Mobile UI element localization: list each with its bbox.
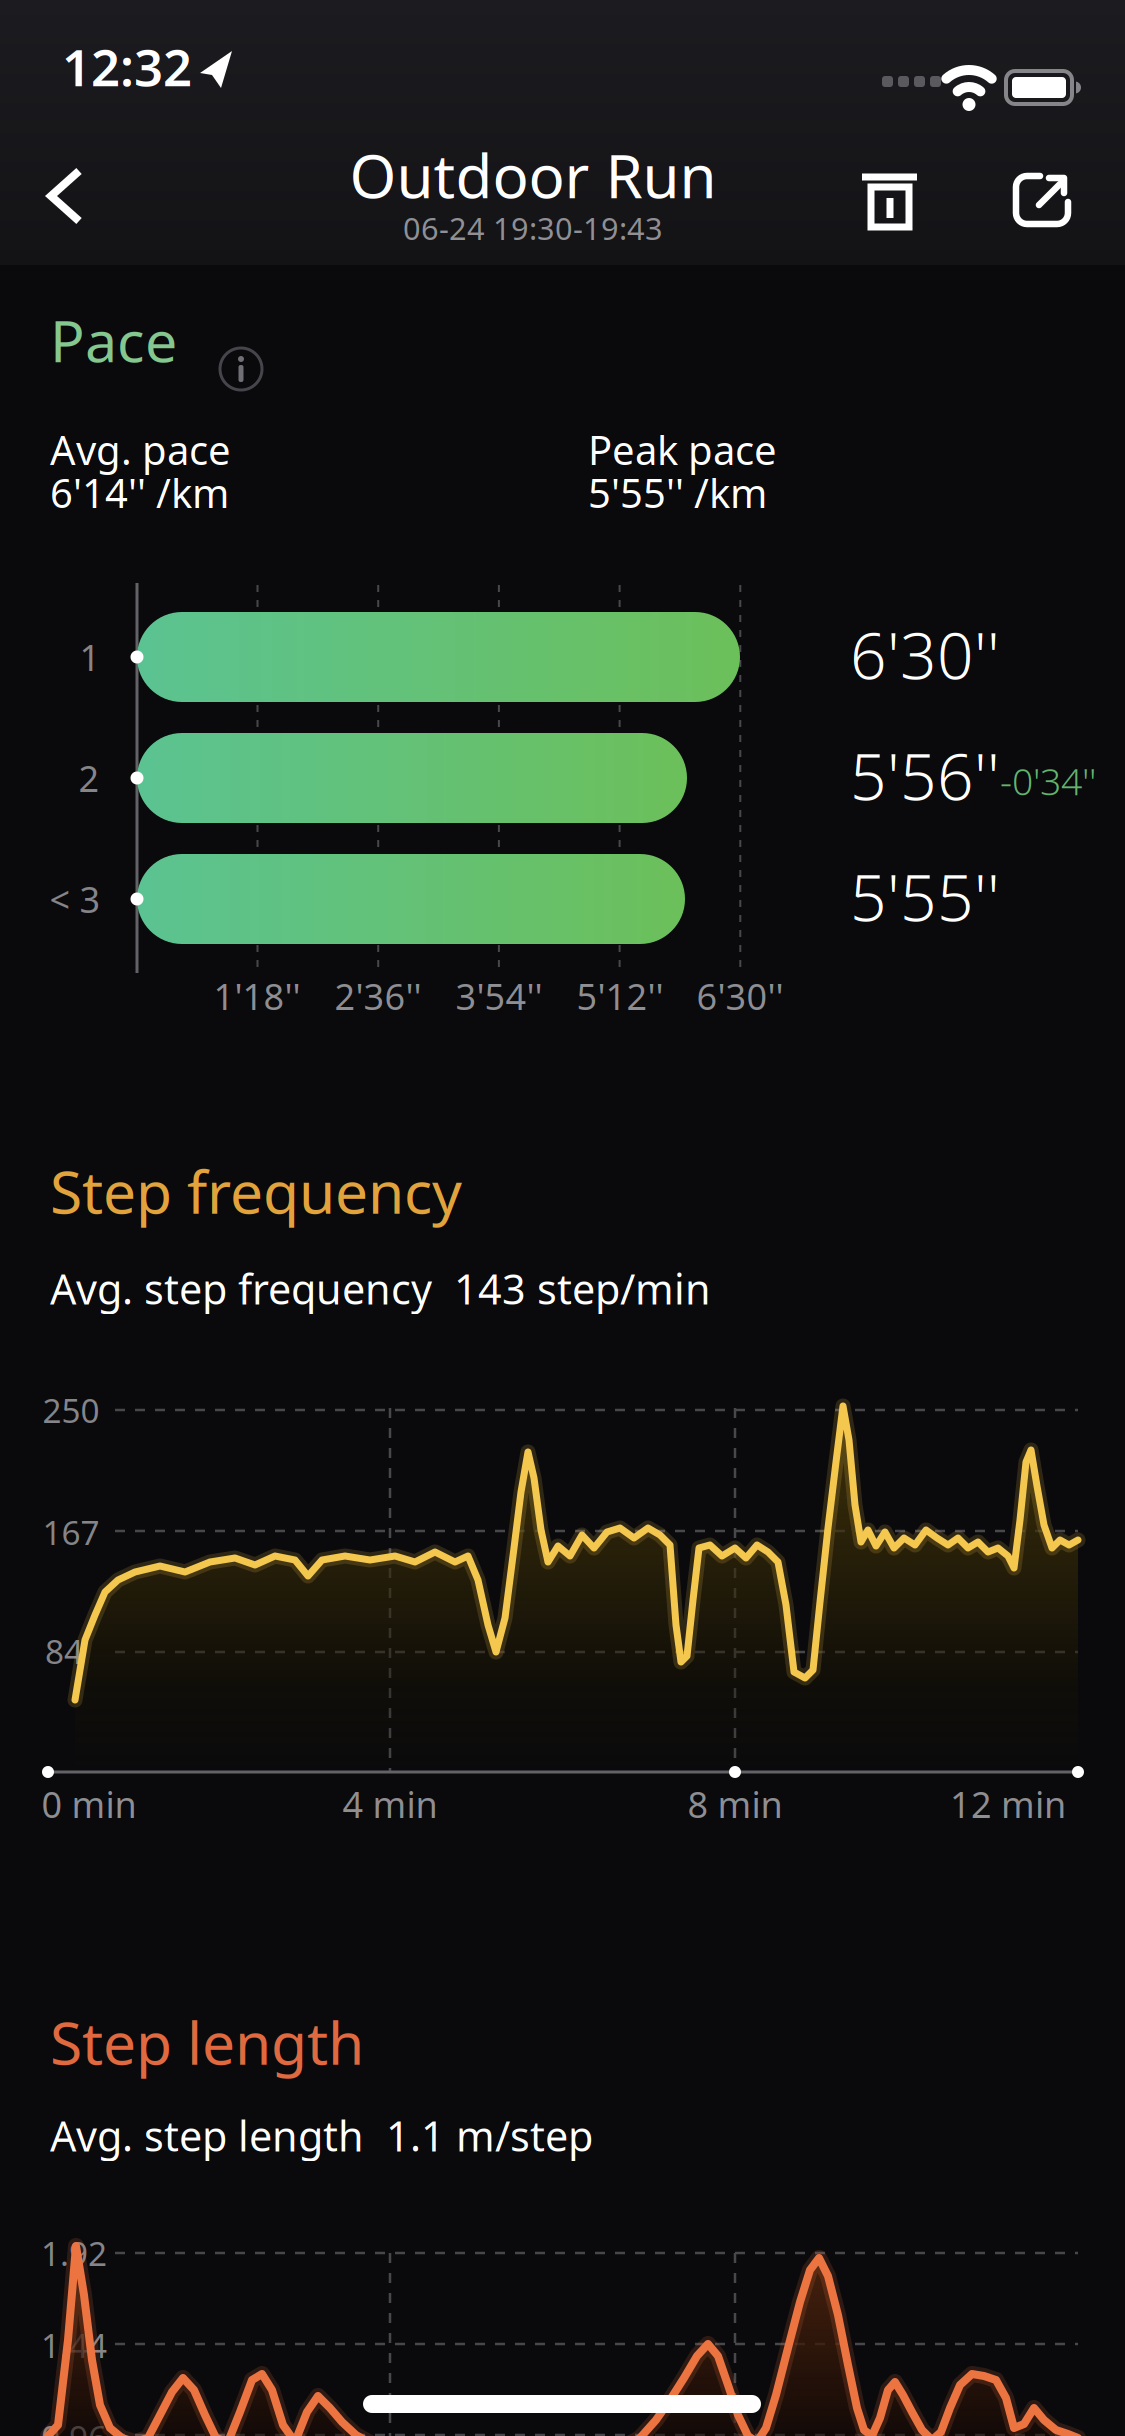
staticText: 5'56'' [850,733,1000,818]
staticText: 8 min [687,1780,782,1828]
staticText: Avg. step length 1.1 m/step [50,2108,593,2163]
staticText: 5'55'' [850,854,1000,939]
staticText: 12 min [950,1780,1066,1828]
staticText: 6'30'' [850,612,1000,697]
staticText: 3'54'' [455,972,542,1020]
staticText: 1.92 [41,2231,107,2275]
staticText: Pace [50,302,177,378]
button[interactable] [0,0,110,120]
staticText: 06-24 19:30-19:43 [403,208,663,248]
staticText: 5'12'' [576,972,663,1020]
staticText: Outdoor Run [349,135,716,215]
staticText: 84 [45,1629,83,1673]
staticText: 250 [42,1388,99,1432]
staticText: 0 min [41,1780,136,1828]
button[interactable] [0,0,90,90]
staticText: 5'55'' /km [588,466,767,519]
staticText: Avg. pace [50,423,231,476]
staticText: 6'30'' [696,972,783,1020]
staticText: 12:32 [62,33,192,100]
staticText: 1'18'' [213,972,300,1020]
staticText: 1 [79,633,100,681]
staticText: 2'36'' [334,972,421,1020]
button[interactable] [0,0,80,80]
staticText: Step length [50,2003,364,2081]
button[interactable] [0,0,80,80]
staticText: Peak pace [588,423,777,476]
staticText: 2 [78,754,99,802]
staticText: 167 [42,1510,99,1554]
staticText: 0.96 [41,2415,107,2436]
staticText: < 3 [49,875,100,923]
staticText: -0'34'' [1000,756,1096,806]
staticText: 6'14'' /km [50,466,229,519]
staticText: 4 min [342,1780,437,1828]
staticText: Step frequency [50,1152,462,1230]
staticText: Avg. step frequency 143 step/min [50,1261,711,1316]
staticText: 1.44 [41,2323,107,2367]
